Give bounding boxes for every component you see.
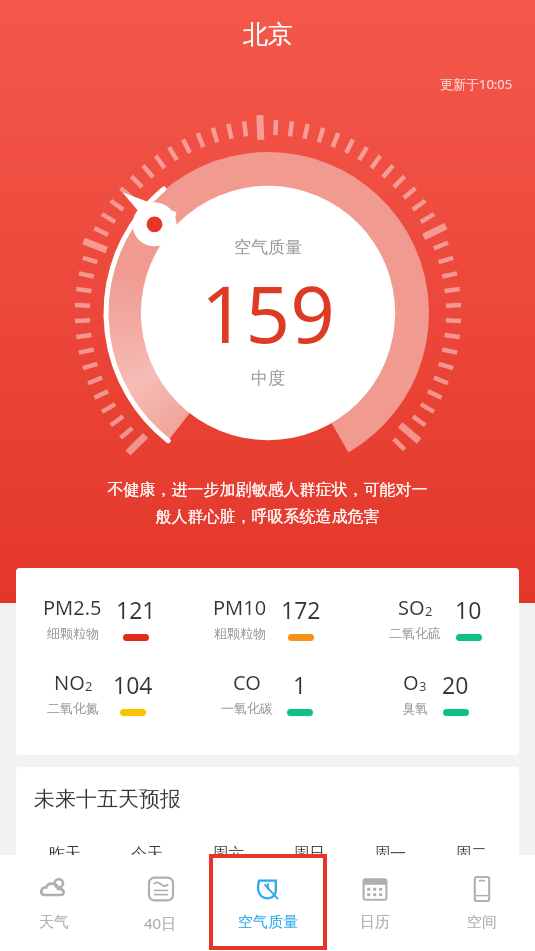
staticText: 空气质量 (234, 237, 302, 258)
staticText: 日历 (360, 913, 390, 932)
staticText: 中度 (251, 368, 285, 389)
staticText: 今天 (131, 844, 163, 864)
staticText: PM10 (213, 594, 267, 621)
other: 空间 (467, 874, 497, 904)
staticText: PM2.5 (43, 594, 102, 621)
staticText: 空间 (467, 913, 497, 932)
staticText: CO (233, 669, 261, 696)
button[interactable]: 空气质量 (214, 855, 321, 951)
staticText: 臭氧 (402, 700, 428, 716)
staticText: 2 (425, 602, 433, 620)
other: 日历 (360, 874, 390, 904)
staticText: 20 (442, 669, 469, 700)
staticText: O (403, 669, 419, 696)
button[interactable]: PM10 (189, 594, 345, 641)
staticText: 172 (281, 594, 321, 625)
staticText: 天气 (39, 913, 69, 932)
button[interactable]: O (357, 669, 513, 716)
staticText: NO (54, 669, 85, 696)
staticText: 104 (113, 669, 153, 700)
button[interactable]: NO (22, 669, 177, 716)
staticText: 周一 (374, 844, 406, 864)
staticText: 2 (85, 677, 93, 695)
staticText: 粗颗粒物 (214, 625, 266, 641)
staticText: 空气质量 (238, 913, 298, 932)
staticText: 更新于10:05 (440, 75, 513, 93)
staticText: 不健康，进一步加剧敏感人群症状，可能对一 般人群心脏，呼吸系统造成危害 (24, 480, 511, 527)
staticText: 159 (201, 260, 335, 366)
staticText: 10 (455, 594, 482, 625)
button[interactable]: 未来十五天预报 (16, 767, 519, 886)
button[interactable]: CO (189, 669, 345, 716)
staticText: SO (398, 594, 425, 621)
staticText: 40日 (144, 913, 177, 933)
button[interactable]: SO (357, 594, 513, 641)
staticText: 1 (293, 669, 307, 700)
button[interactable]: 天气 (0, 855, 107, 951)
button[interactable]: 空间 (428, 855, 535, 951)
staticText: 3 (419, 677, 427, 695)
staticText: 昨天 (49, 844, 81, 864)
staticText: 一氧化碳 (221, 700, 273, 716)
staticText: 未来十五天预报 (34, 786, 181, 812)
staticText: 周六 (212, 844, 244, 864)
other: 天气 (39, 874, 69, 904)
staticText: 周二 (455, 844, 487, 864)
staticText: 周日 (293, 844, 325, 864)
button[interactable]: PM2.5 (22, 594, 177, 641)
button[interactable]: PM2.5 (16, 568, 519, 755)
staticText: 121 (116, 594, 156, 625)
staticText: 北京 (243, 19, 293, 50)
button[interactable]: 40日 (107, 855, 214, 951)
other: 40日 (146, 874, 176, 904)
staticText: 细颗粒物 (47, 625, 99, 641)
staticText: 二氧化氮 (47, 700, 99, 716)
other: 空气质量 (253, 874, 283, 904)
button[interactable]: 日历 (321, 855, 428, 951)
staticText: 二氧化硫 (389, 625, 441, 641)
